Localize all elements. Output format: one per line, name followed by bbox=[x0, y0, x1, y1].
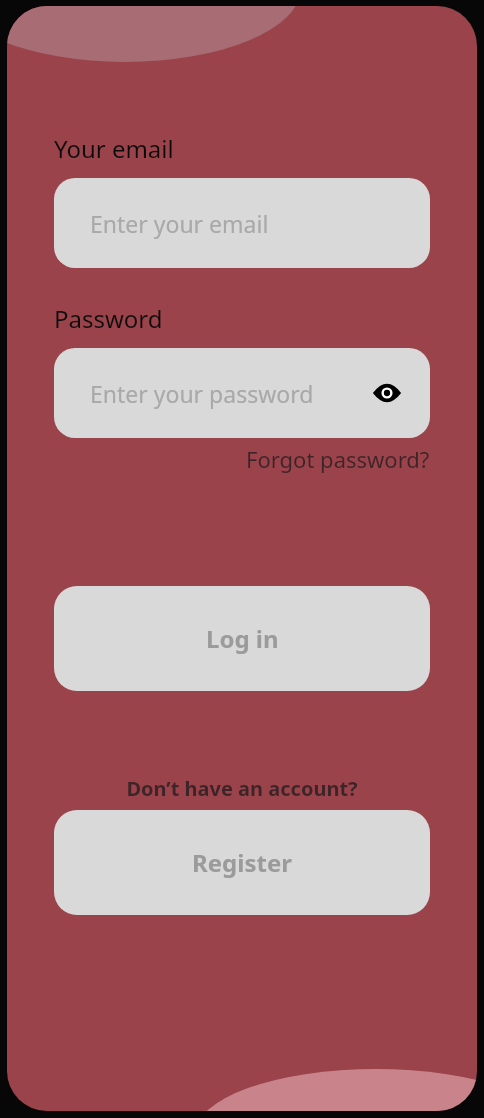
button[interactable]: Enter your password bbox=[54, 348, 430, 438]
staticText: Enter your email bbox=[90, 208, 404, 239]
button[interactable]: Enter your email bbox=[54, 178, 430, 268]
staticText: Enter your password bbox=[90, 378, 370, 409]
button[interactable]: Forgot password? bbox=[54, 444, 430, 474]
button[interactable]: Register bbox=[54, 810, 430, 915]
staticText: Your email bbox=[54, 132, 174, 165]
button[interactable]: Show password bbox=[370, 376, 404, 410]
staticText: Log in bbox=[206, 622, 279, 655]
button[interactable]: Log in bbox=[54, 586, 430, 691]
staticText: Don’t have an account? bbox=[54, 775, 430, 802]
staticText: Register bbox=[192, 846, 292, 879]
staticText: Forgot password? bbox=[246, 444, 430, 474]
staticText: Password bbox=[54, 302, 163, 335]
